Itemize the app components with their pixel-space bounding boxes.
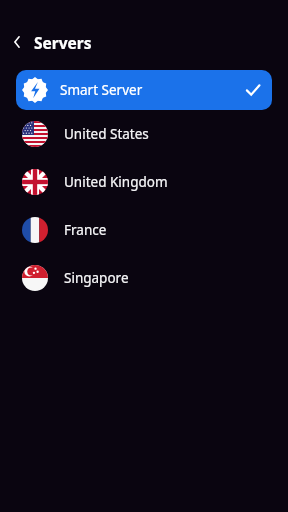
button[interactable]: France (0, 206, 288, 254)
staticText: United Kingdom (64, 173, 168, 191)
button[interactable]: Smart Server (16, 70, 272, 110)
staticText: Servers (34, 32, 92, 53)
button[interactable]: United States (0, 110, 288, 158)
button[interactable]: Singapore (0, 254, 288, 302)
button[interactable]: Back (4, 29, 30, 55)
button[interactable]: United Kingdom (0, 158, 288, 206)
staticText: Smart Server (60, 81, 143, 99)
staticText: Singapore (64, 269, 129, 287)
staticText: United States (64, 125, 149, 143)
staticText: France (64, 221, 107, 239)
